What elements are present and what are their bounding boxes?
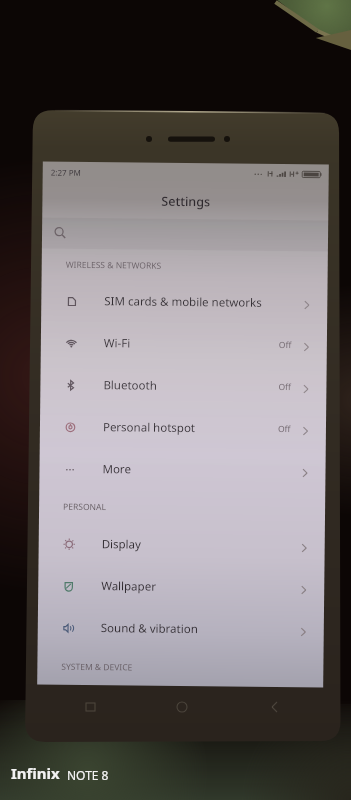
staticText: Infinix — [11, 763, 60, 783]
staticText: Settings — [161, 193, 210, 210]
button[interactable]: Wi-Fi — [41, 321, 327, 367]
button[interactable]: Wallpaper — [38, 564, 324, 609]
staticText: NOTE 8 — [67, 767, 109, 783]
staticText: Bluetooth — [103, 377, 157, 394]
staticText: SIM cards & mobile networks — [104, 293, 262, 311]
staticText: Off — [279, 339, 292, 351]
button[interactable]: Bluetooth — [40, 363, 327, 409]
button[interactable]: Search settings — [42, 217, 328, 252]
staticText: More — [102, 461, 132, 477]
button[interactable]: Sound & vibration — [38, 606, 324, 651]
button[interactable]: More — [39, 447, 326, 493]
staticText: Wallpaper — [101, 578, 156, 595]
button[interactable]: Personal hotspot — [40, 405, 326, 451]
staticText: PERSONAL — [63, 501, 106, 513]
staticText: Personal hotspot — [103, 419, 196, 436]
staticText: Wi-Fi — [104, 335, 131, 351]
staticText: Off — [278, 423, 291, 435]
staticText: 2:27 PM — [51, 167, 82, 178]
staticText: WIRELESS & NETWORKS — [66, 259, 162, 272]
button[interactable]: Display — [38, 522, 325, 567]
staticText: Off — [278, 381, 291, 393]
staticText: Display — [102, 536, 142, 552]
staticText: Sound & vibration — [101, 620, 198, 637]
button[interactable]: SIM cards & mobile networks — [41, 279, 327, 325]
staticText: SYSTEM & DEVICE — [61, 661, 132, 673]
